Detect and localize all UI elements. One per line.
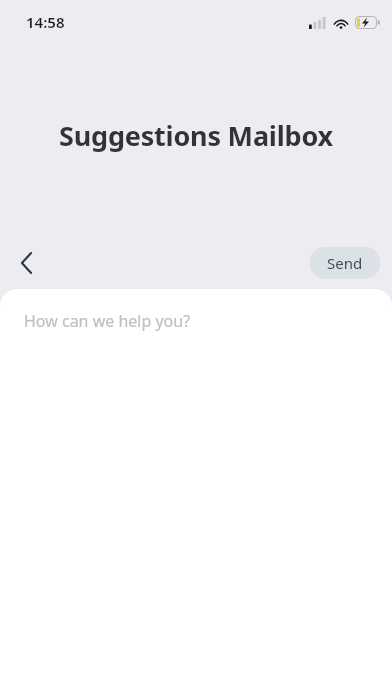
button[interactable]: Back: [8, 245, 44, 281]
button[interactable]: How can we help you?: [0, 289, 392, 696]
staticText: 14:58: [26, 12, 65, 32]
staticText: Suggestions Mailbox: [59, 117, 333, 154]
button[interactable]: Send: [310, 247, 380, 279]
staticText: Send: [327, 253, 363, 273]
staticText: How can we help you?: [24, 310, 191, 332]
